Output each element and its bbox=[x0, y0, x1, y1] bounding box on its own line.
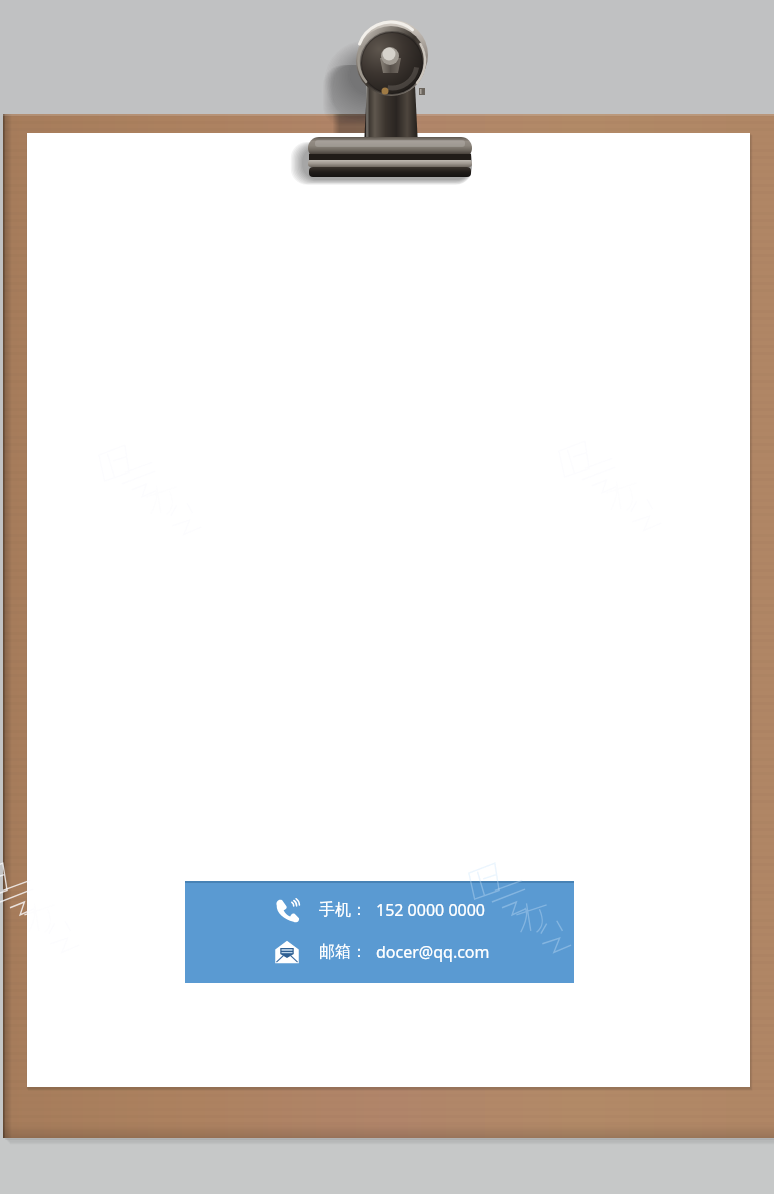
button[interactable]: Send email bbox=[267, 936, 490, 968]
other: Call phone bbox=[275, 898, 299, 922]
staticText: 手机： bbox=[319, 900, 367, 920]
button[interactable]: Call phone bbox=[267, 894, 485, 926]
staticText: docer@qq.com bbox=[376, 941, 490, 963]
staticText: 邮箱： bbox=[319, 942, 367, 962]
button[interactable]: Call phone bbox=[185, 881, 574, 983]
other: Send email bbox=[275, 940, 299, 964]
staticText: 152 0000 0000 bbox=[376, 899, 485, 921]
